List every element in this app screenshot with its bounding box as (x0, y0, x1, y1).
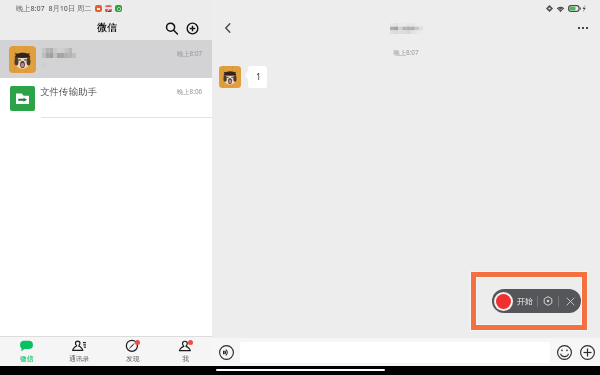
button[interactable]: 发现 (106, 337, 159, 366)
button[interactable]: 我 (159, 337, 212, 366)
staticText: 微信 (20, 354, 34, 363)
staticText: 开始 (517, 296, 533, 306)
button[interactable]: Back (220, 20, 236, 36)
staticText: 晚上8:06 (177, 87, 203, 96)
staticText: 1 (256, 71, 261, 83)
button[interactable]: Emoji (556, 344, 572, 360)
button[interactable]: Settings (542, 295, 554, 307)
button[interactable]: 微信 (0, 337, 53, 366)
button[interactable]: Search (163, 20, 179, 36)
button[interactable]: Record (496, 294, 511, 309)
button[interactable]: Add (184, 20, 200, 36)
staticText: 文件传输助手 (40, 86, 97, 98)
staticText: 通讯录 (69, 354, 90, 363)
button[interactable]: 晚上8:07 (0, 40, 212, 78)
button[interactable]: Voice input (218, 344, 234, 360)
button[interactable]: 文件传输助手 (0, 78, 212, 118)
staticText: 我 (182, 354, 189, 363)
staticText: 晚上8:07 (212, 48, 600, 57)
staticText: 微信 (97, 22, 117, 34)
button[interactable]: 通讯录 (53, 337, 106, 366)
staticText: 发现 (126, 354, 140, 363)
staticText: 晚上8:07 8月10日 周二 (16, 3, 92, 13)
button[interactable]: More (579, 344, 595, 360)
button[interactable]: Close (564, 295, 576, 307)
button[interactable]: More options (575, 20, 591, 36)
staticText: 晚上8:07 (177, 49, 203, 58)
